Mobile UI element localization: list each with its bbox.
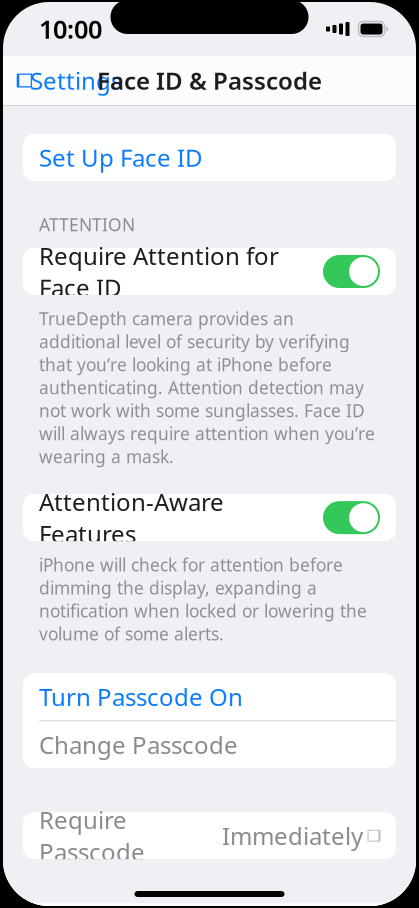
button[interactable]: Attention-Aware Features (23, 494, 396, 541)
staticText: Face ID & Passcode (97, 65, 322, 96)
button[interactable]: Settings (9, 57, 128, 104)
staticText: Require Passcode (39, 804, 145, 867)
button[interactable]: Turn Passcode On (23, 673, 396, 720)
staticText: Settings (30, 65, 122, 96)
staticText: Immediately (222, 820, 363, 852)
button[interactable]: Voice Dial (23, 903, 396, 908)
staticText: iPhone will check for attention before d… (39, 553, 367, 645)
staticText: Attention-Aware Features (39, 486, 224, 549)
button[interactable]: Require Attention for Face ID (23, 248, 396, 295)
staticText: Turn Passcode On (39, 681, 243, 713)
staticText: TrueDepth camera provides an additional … (39, 307, 375, 468)
staticText: ATTENTION (39, 213, 135, 236)
staticText: Require Attention for Face ID (39, 240, 279, 303)
button[interactable]: Require Passcode (23, 812, 396, 859)
button[interactable]: Set Up Face ID (23, 134, 396, 181)
button[interactable]: Change Passcode (23, 721, 396, 768)
staticText: Set Up Face ID (39, 142, 203, 173)
staticText: 10:00 (39, 12, 102, 46)
staticText: Change Passcode (39, 729, 238, 761)
